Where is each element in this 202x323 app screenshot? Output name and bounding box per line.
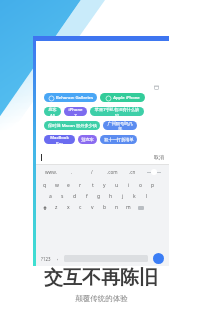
staticText: q <box>43 182 47 189</box>
staticText: .cn <box>129 169 136 175</box>
staticText: , <box>57 255 59 262</box>
button[interactable]: g <box>93 191 104 202</box>
staticText: p <box>151 182 155 189</box>
staticText: o <box>139 182 143 189</box>
button[interactable]: , <box>53 251 62 266</box>
staticText: iPhone 7 <box>67 107 84 116</box>
staticText: f <box>86 193 88 200</box>
button[interactable]: p <box>147 180 158 191</box>
staticText: r <box>79 182 82 189</box>
staticText: w <box>55 182 59 189</box>
staticText: x <box>67 204 70 211</box>
staticText: 保时捷 Macan 国外多少钱 <box>48 123 97 129</box>
button[interactable]: www. <box>40 165 61 178</box>
button[interactable]: q <box>39 180 50 191</box>
button[interactable]: e <box>63 180 74 191</box>
staticText: 交互不再陈旧 <box>44 266 158 290</box>
button[interactable]: 保时捷 Macan 国外多少钱 <box>44 121 100 130</box>
staticText: 别克车 <box>81 137 94 142</box>
button[interactable]: r <box>75 180 86 191</box>
staticText: u <box>115 182 119 189</box>
button[interactable]: n <box>111 202 122 213</box>
staticText: Behance: Galleries <box>56 95 93 101</box>
button[interactable]: o <box>135 180 146 191</box>
button[interactable]: / <box>82 165 102 178</box>
staticText: c <box>79 204 82 211</box>
staticText: 鹿客 A5 <box>47 107 58 116</box>
staticText: www. <box>45 169 57 175</box>
button[interactable]: j <box>117 191 128 202</box>
staticText: j <box>122 193 124 200</box>
staticText: MacBook Pro <box>47 135 72 144</box>
button[interactable]: w <box>51 180 62 191</box>
button[interactable]: z <box>51 202 62 213</box>
staticText: 颠覆传统的体验 <box>75 294 128 303</box>
button[interactable]: Backspace <box>135 202 146 213</box>
button[interactable]: h <box>105 191 116 202</box>
staticText: l <box>146 193 148 200</box>
staticText: y <box>103 182 106 189</box>
button[interactable]: Toggle <box>142 165 165 178</box>
staticText: h <box>109 193 113 200</box>
button[interactable]: x <box>63 202 74 213</box>
button[interactable]: Behance: Galleries <box>44 93 97 102</box>
button[interactable]: b <box>99 202 110 213</box>
button[interactable]: 双十一打折清单 <box>100 135 137 144</box>
staticText: .com <box>107 169 118 175</box>
button[interactable]: 广州限号吗几年 <box>103 121 137 130</box>
button[interactable] <box>41 150 150 164</box>
button[interactable]: u <box>111 180 122 191</box>
staticText: / <box>91 169 93 175</box>
button[interactable]: MacBook Pro <box>44 135 75 144</box>
staticText: n <box>115 204 119 211</box>
staticText: 广州限号吗几年 <box>106 121 134 130</box>
button[interactable]: .com <box>102 165 122 178</box>
button[interactable]: Search <box>153 253 164 264</box>
staticText: ?123 <box>41 256 51 262</box>
button[interactable]: s <box>57 191 68 202</box>
button[interactable]: m <box>123 202 134 213</box>
button[interactable]: 苹果7手机有没有什么缺陷 <box>90 107 144 116</box>
staticText: g <box>97 193 101 200</box>
staticText: a <box>49 193 52 200</box>
button[interactable]: f <box>81 191 92 202</box>
button[interactable]: d <box>69 191 80 202</box>
button[interactable]: iPhone 7 <box>64 107 87 116</box>
button[interactable]: Apple iPhone <box>100 93 145 102</box>
button[interactable]: k <box>129 191 140 202</box>
staticText: s <box>61 193 64 200</box>
button[interactable]: a <box>45 191 56 202</box>
button[interactable]: .cn <box>122 165 142 178</box>
staticText: z <box>55 204 58 211</box>
staticText: v <box>91 204 94 211</box>
staticText: i <box>128 182 130 189</box>
staticText: d <box>73 193 77 200</box>
staticText: Apple iPhone <box>113 95 140 101</box>
staticText: e <box>67 182 70 189</box>
staticText: 取消 <box>154 154 164 160</box>
staticText: m <box>126 204 131 211</box>
button[interactable]: t <box>87 180 98 191</box>
button[interactable]: l <box>141 191 152 202</box>
button[interactable]: 鹿客 A5 <box>44 107 61 116</box>
staticText: 双十一打折清单 <box>104 137 134 142</box>
button[interactable]: c <box>75 202 86 213</box>
button[interactable]: ?123 <box>39 251 53 266</box>
staticText: 苹果7手机有没有什么缺陷 <box>93 107 141 116</box>
button[interactable]: y <box>99 180 110 191</box>
staticText: t <box>92 182 94 189</box>
button[interactable]: i <box>123 180 134 191</box>
button[interactable]: 别克车 <box>78 135 97 144</box>
staticText: . <box>71 169 73 175</box>
button[interactable]: Shift <box>39 202 50 213</box>
button[interactable]: v <box>87 202 98 213</box>
staticText: b <box>103 204 107 211</box>
staticText: k <box>133 193 136 200</box>
button[interactable]: 取消 <box>154 154 164 160</box>
button[interactable]: Clear history <box>152 83 160 91</box>
